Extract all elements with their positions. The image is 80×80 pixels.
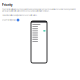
staticText: Priority	[2, 3, 13, 7]
staticText: 2. Tap Priority, then tap	[2, 19, 16, 21]
staticText: The Priority setting lets you choose whi…	[2, 8, 76, 12]
staticText: 1. Open the Settings app, then tap Focus…	[2, 14, 37, 16]
